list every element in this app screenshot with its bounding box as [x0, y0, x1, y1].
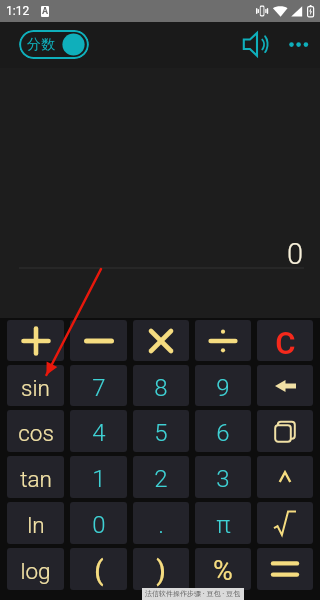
button[interactable]: ln [7, 502, 64, 544]
other: Square root [274, 511, 296, 535]
other: Power [279, 471, 291, 483]
button[interactable]: log [7, 548, 64, 590]
staticText: 9 [216, 374, 230, 402]
staticText: 5 [154, 419, 168, 447]
staticText: 4 [92, 419, 106, 447]
other: Equals [272, 560, 298, 578]
staticText: 0 [287, 237, 304, 271]
other: Divide [208, 326, 238, 356]
button[interactable]: Square root [257, 502, 313, 544]
button[interactable]: 2 [133, 456, 189, 498]
button[interactable]: Sound [240, 30, 270, 60]
button[interactable]: ) [133, 548, 189, 590]
button[interactable]: cos [7, 410, 64, 452]
staticText: tan [20, 466, 52, 492]
button[interactable]: tan [7, 456, 64, 498]
staticText: ( [94, 555, 104, 587]
button[interactable]: Multiply [133, 320, 189, 361]
other: Plus [21, 326, 51, 356]
button[interactable]: % [195, 548, 251, 590]
staticText: sin [21, 375, 50, 401]
button[interactable]: 5 [133, 410, 189, 452]
staticText: 分数 [27, 36, 55, 54]
staticText: π [216, 511, 231, 539]
button[interactable]: 6 [195, 410, 251, 452]
staticText: 7 [92, 374, 106, 402]
staticText: 1 [92, 465, 106, 493]
button[interactable]: Divide [195, 320, 251, 361]
button[interactable]: 4 [70, 410, 127, 452]
button[interactable]: C [257, 320, 313, 361]
button[interactable]: . [133, 502, 189, 544]
staticText: C [275, 325, 296, 361]
staticText: ln [27, 512, 45, 538]
staticText: 1:12 [6, 4, 30, 18]
other: Backspace [275, 380, 296, 392]
staticText: % [213, 555, 233, 587]
button[interactable]: Minus [70, 320, 127, 361]
button[interactable]: 0 [70, 502, 127, 544]
button[interactable]: ( [70, 548, 127, 590]
button[interactable]: 7 [70, 365, 127, 406]
button[interactable]: Power [257, 456, 313, 498]
button[interactable]: 8 [133, 365, 189, 406]
staticText: 0 [92, 511, 106, 539]
other: Minus [84, 326, 114, 356]
button[interactable]: 1 [70, 456, 127, 498]
button[interactable]: Copy [257, 410, 313, 452]
staticText: 2 [154, 465, 168, 493]
button[interactable]: Plus [7, 320, 64, 361]
staticText: ) [156, 555, 166, 587]
button[interactable]: 分数 [19, 30, 89, 59]
other: Copy [275, 421, 295, 442]
button[interactable]: Equals [257, 548, 313, 590]
button[interactable]: sin [7, 365, 64, 406]
staticText: . [158, 511, 164, 539]
staticText: log [20, 558, 51, 584]
staticText: 3 [216, 465, 230, 493]
button[interactable]: 9 [195, 365, 251, 406]
staticText: 6 [216, 419, 230, 447]
other: Multiply [146, 326, 176, 356]
button[interactable]: More options [284, 30, 314, 60]
button[interactable]: π [195, 502, 251, 544]
staticText: cos [18, 420, 54, 446]
staticText: A [42, 6, 49, 17]
button[interactable]: Backspace [257, 365, 313, 406]
button[interactable]: 3 [195, 456, 251, 498]
staticText: 8 [154, 374, 168, 402]
staticText: 法信软件操作步骤 · 豆包 · 豆包 [145, 589, 241, 599]
